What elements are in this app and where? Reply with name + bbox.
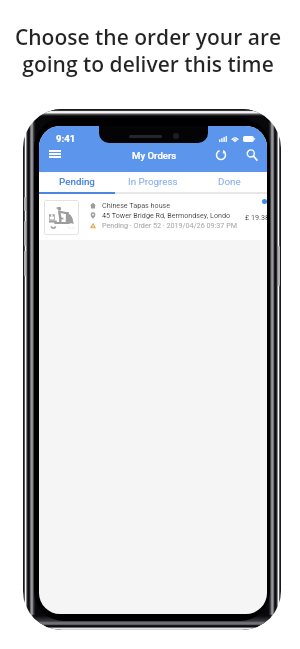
staticText: 45 Tower Bridge Rd, Bermondsey, Londo — [102, 211, 231, 219]
staticText: In Progress — [128, 176, 178, 187]
button[interactable]: Search orders — [240, 143, 264, 167]
staticText: Choose the order your are going to deliv… — [0, 23, 298, 78]
button[interactable]: Chinese Tapas house — [39, 194, 267, 240]
staticText: Pending — [59, 176, 95, 187]
staticText: Chinese Tapas house — [102, 201, 171, 209]
button[interactable]: Done — [191, 171, 267, 191]
button[interactable]: Refresh orders — [209, 143, 233, 167]
staticText: £ 19.38 — [245, 213, 267, 221]
button[interactable]: Open navigation menu — [43, 143, 67, 165]
staticText: Pending · Order 52 · 2019/04/26 09:37 PM — [102, 221, 237, 229]
button[interactable]: In Progress — [115, 171, 191, 191]
staticText: Done — [218, 176, 241, 187]
button[interactable]: Pending — [39, 171, 115, 191]
staticText: 9:41 — [56, 133, 76, 144]
staticText: My Orders — [132, 150, 177, 161]
